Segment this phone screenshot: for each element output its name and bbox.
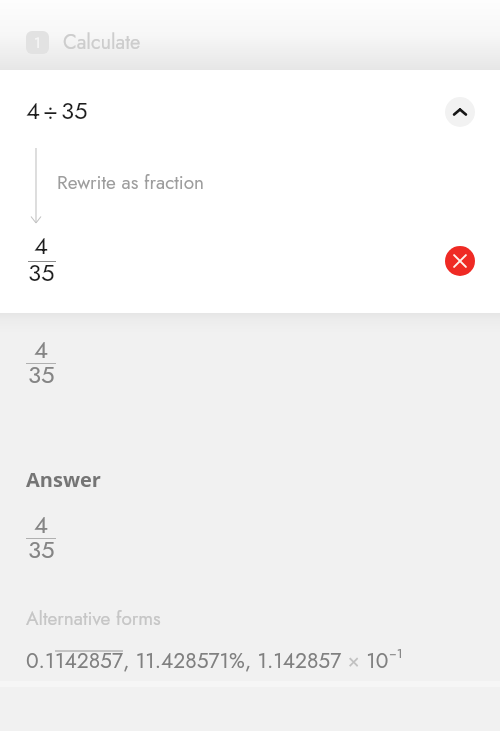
staticText: × <box>348 647 360 674</box>
staticText: Answer <box>26 466 101 493</box>
staticText: 142857 <box>55 646 123 676</box>
staticText: 4 <box>34 507 48 542</box>
staticText: 35 <box>61 93 88 128</box>
button[interactable]: Collapse step <box>445 97 475 127</box>
staticText: 4 <box>26 93 40 128</box>
staticText: 1 <box>34 32 41 54</box>
staticText: 35 <box>28 255 55 290</box>
staticText: 35 <box>28 532 55 567</box>
staticText: Rewrite as fraction <box>57 169 205 196</box>
staticText: , 11.428571%, 1.142857 <box>123 646 348 676</box>
staticText: 35 <box>28 357 55 392</box>
button[interactable]: 1 <box>26 28 141 57</box>
staticText: ÷ <box>43 93 58 128</box>
staticText: 10 <box>360 646 389 676</box>
staticText: Calculate <box>63 28 141 57</box>
button[interactable]: Remove step <box>445 246 475 276</box>
staticText: 0.1 <box>26 646 55 676</box>
staticText: Alternative forms <box>26 605 161 632</box>
staticText: −1 <box>389 644 403 663</box>
staticText: 4 <box>34 228 48 263</box>
staticText: 4 <box>34 332 48 367</box>
